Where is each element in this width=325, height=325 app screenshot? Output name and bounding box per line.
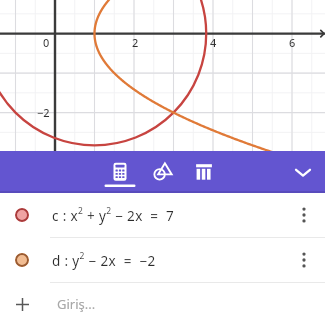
button[interactable]: d : y2 − 2x = −2	[0, 238, 325, 282]
button[interactable]: Table	[184, 151, 224, 193]
staticText: 2	[132, 35, 139, 50]
staticText: Giriş...	[57, 295, 96, 313]
staticText: 0	[43, 35, 50, 50]
staticText: −2	[37, 105, 50, 120]
staticText: 4	[210, 35, 217, 50]
button[interactable]: More options	[283, 238, 325, 282]
button[interactable]: Geometry	[142, 151, 182, 193]
staticText: c : x2 + y2 − 2x = 7	[52, 205, 175, 225]
staticText: 6	[289, 35, 296, 50]
button[interactable]: Add expression	[0, 283, 325, 325]
button[interactable]: Keypad	[100, 151, 140, 193]
button[interactable]: c : x2 + y2 − 2x = 7	[0, 193, 325, 237]
other: Add expression	[0, 283, 44, 325]
staticText: d : y2 − 2x = −2	[52, 250, 156, 270]
button[interactable]: More options	[283, 193, 325, 237]
button[interactable]: Collapse keypad	[282, 151, 324, 193]
